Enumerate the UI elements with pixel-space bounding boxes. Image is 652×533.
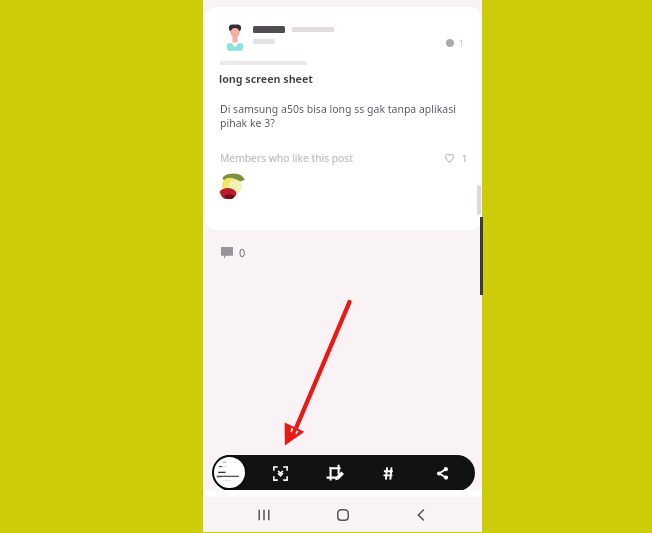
staticText: long screen sheet [219, 72, 313, 87]
staticText: 1 [459, 38, 464, 49]
staticText: 0 [239, 245, 246, 260]
button[interactable]: Back [399, 498, 443, 531]
button[interactable]: 1 [205, 7, 481, 230]
button[interactable]: Share [423, 455, 461, 491]
button[interactable]: Home [321, 498, 365, 531]
button[interactable]: Recent apps [242, 498, 286, 531]
button[interactable]: Scroll capture [261, 455, 299, 491]
button[interactable]: Screenshot preview [212, 455, 247, 490]
staticText: 1 [462, 152, 468, 164]
button[interactable]: Crop and edit [315, 455, 353, 491]
button[interactable]: 0 [219, 243, 248, 262]
staticText: Members who like this post [220, 151, 353, 165]
button[interactable]: Tags [369, 455, 407, 491]
staticText: Di samsung a50s bisa long ss gak tanpa a… [220, 102, 456, 130]
